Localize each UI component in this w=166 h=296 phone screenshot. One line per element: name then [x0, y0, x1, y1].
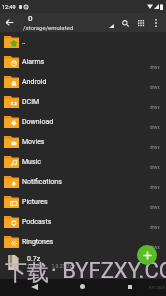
button[interactable]: Ringtones: [0, 232, 166, 252]
button[interactable]: More options: [149, 14, 163, 32]
staticText: · BYFZXY.COM: [51, 258, 166, 284]
staticText: drwx: [150, 205, 160, 210]
staticText: 976.2468: [149, 285, 165, 289]
staticText: drwx: [150, 65, 160, 70]
button[interactable]: Recents: [122, 279, 137, 294]
button[interactable]: Search: [118, 14, 133, 32]
staticText: Podcasts: [22, 218, 150, 226]
staticText: DCIM: [22, 98, 150, 106]
button[interactable]: Home: [75, 279, 90, 294]
button[interactable]: Back: [0, 13, 19, 32]
button[interactable]: DCIM: [0, 92, 166, 112]
staticText: drwx: [150, 145, 160, 150]
button[interactable]: Add: [137, 245, 157, 265]
staticText: drwx: [150, 85, 160, 90]
staticText: 0: [28, 14, 33, 23]
button[interactable]: ..: [0, 32, 166, 52]
staticText: Movies: [22, 138, 150, 146]
button[interactable]: Back: [27, 279, 42, 294]
button[interactable]: Pictures: [0, 192, 166, 212]
staticText: 0.7z: [27, 255, 41, 263]
staticText: 下载: [5, 259, 49, 287]
staticText: Pictures: [22, 198, 150, 206]
button[interactable]: Notifications: [0, 172, 166, 192]
button[interactable]: 0.7z: [0, 252, 166, 272]
staticText: drwx: [150, 165, 160, 170]
staticText: Android: [22, 78, 150, 86]
button[interactable]: Grid view: [133, 14, 149, 32]
button[interactable]: Music: [0, 152, 166, 172]
button[interactable]: Alarms: [0, 52, 166, 72]
staticText: Alarms: [22, 58, 150, 66]
button[interactable]: Movies: [0, 132, 166, 152]
staticText: Ringtones: [22, 238, 150, 246]
staticText: 12:49: [2, 4, 16, 10]
button[interactable]: Download: [0, 112, 166, 132]
staticText: drwx: [150, 105, 160, 110]
staticText: drwx: [150, 125, 160, 130]
button[interactable]: Android: [0, 72, 166, 92]
staticText: 10.98 K 1.0.23.7z: [27, 263, 72, 269]
staticText: /storage/emulated: [23, 24, 74, 31]
button[interactable]: Podcasts: [0, 212, 166, 232]
staticText: Download: [22, 118, 150, 126]
staticText: drwx: [150, 225, 160, 230]
staticText: Notifications: [22, 178, 150, 186]
staticText: Music: [22, 158, 150, 166]
staticText: ..: [22, 38, 160, 46]
staticText: drwx: [150, 245, 160, 250]
staticText: drwx: [150, 185, 160, 190]
